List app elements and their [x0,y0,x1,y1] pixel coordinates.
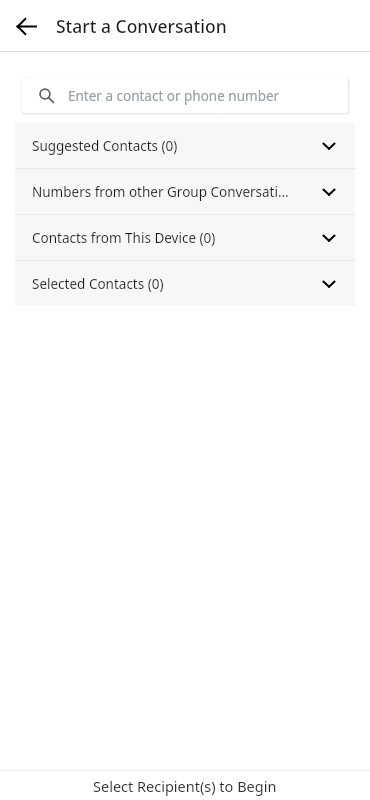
staticText: Enter a contact or phone number [68,87,280,105]
button[interactable]: Suggested Contacts (0) [15,123,355,168]
staticText: Selected Contacts (0) [32,275,164,293]
staticText: Contacts from This Device (0) [32,229,216,247]
button[interactable]: Numbers from other Group Conversati… [15,169,355,214]
staticText: Numbers from other Group Conversati… [32,183,289,201]
staticText: Suggested Contacts (0) [32,137,178,155]
button[interactable]: Select Recipient(s) to Begin [0,771,370,800]
button[interactable]: Enter a contact or phone number [22,78,348,113]
button[interactable]: Back [8,8,44,44]
button[interactable]: Selected Contacts (0) [15,261,355,306]
button[interactable]: Contacts from This Device (0) [15,215,355,260]
staticText: Start a Conversation [56,14,227,38]
staticText: Select Recipient(s) to Begin [93,776,277,796]
